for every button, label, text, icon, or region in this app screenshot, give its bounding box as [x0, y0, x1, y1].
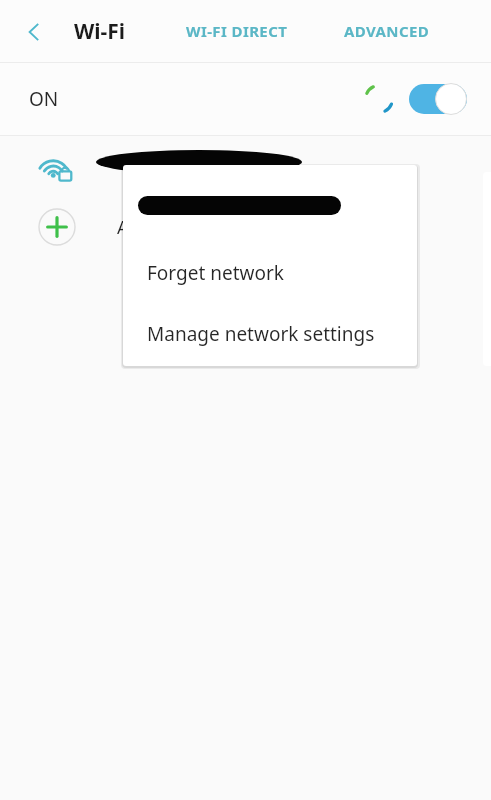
- button[interactable]: Manage network settings: [123, 304, 417, 364]
- button[interactable]: ADVANCED: [336, 8, 438, 54]
- staticText: WI-FI DIRECT: [186, 21, 288, 41]
- button[interactable]: Add network: [0, 196, 491, 258]
- button[interactable]: Back: [12, 10, 56, 54]
- staticText: ADVANCED: [344, 21, 430, 41]
- staticText: Forget network: [147, 260, 284, 286]
- staticText: Manage network settings: [147, 321, 375, 347]
- staticText: ON: [29, 86, 59, 112]
- button[interactable]: Forget network: [123, 243, 417, 303]
- staticText: Wi-Fi: [74, 17, 126, 46]
- button[interactable]: ON: [0, 63, 491, 135]
- button[interactable]: Wi-Fi toggle: [409, 83, 467, 115]
- staticText: Add network: [117, 215, 226, 240]
- button[interactable]: [0, 136, 491, 196]
- button[interactable]: WI-FI DIRECT: [178, 8, 296, 54]
